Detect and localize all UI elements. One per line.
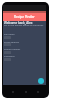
button[interactable]: Add [38,78,44,84]
button[interactable]: Recipe Finder [3,13,46,21]
staticText: Full name [4,33,15,36]
staticText: Password [4,55,15,58]
staticText: Recipe Finder [14,15,35,19]
staticText: Fill in the details below to continue. [4,23,44,26]
staticText: Email address [4,41,20,44]
staticText: Welcome back, Alex [4,21,33,25]
staticText: Phone number [4,48,21,51]
